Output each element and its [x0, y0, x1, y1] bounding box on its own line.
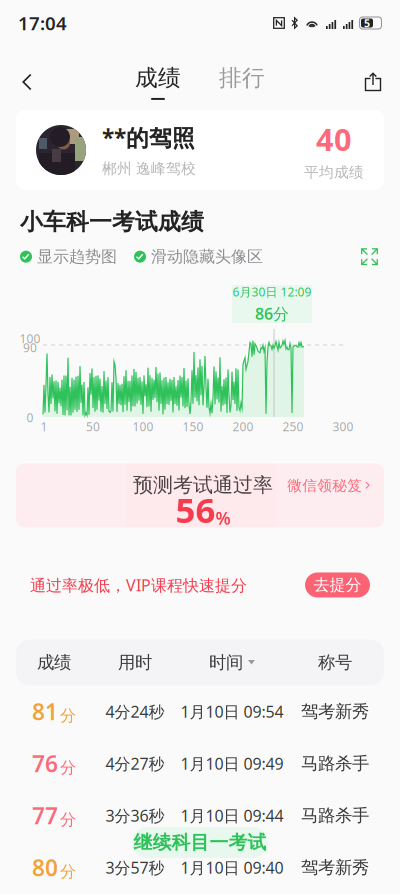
staticText: 77: [32, 800, 58, 830]
button[interactable]: Share: [351, 60, 395, 104]
button[interactable]: 继续科目一考试: [132, 827, 268, 858]
staticText: 马路杀手: [301, 753, 369, 774]
staticText: 250: [282, 418, 303, 434]
button[interactable]: 排行: [200, 60, 284, 104]
staticText: 300: [332, 418, 353, 434]
button[interactable]: 77: [1, 789, 399, 841]
button[interactable]: 微信领秘笈: [278, 477, 370, 493]
staticText: 驾考新秀: [301, 701, 369, 722]
staticText: 小车科一考试成绩: [20, 208, 204, 236]
button[interactable]: 81: [1, 685, 399, 737]
staticText: 成绩: [135, 64, 181, 92]
staticText: 4分27秒: [105, 753, 164, 774]
button[interactable]: 时间: [178, 639, 286, 685]
staticText: 1月10日 09:40: [180, 857, 283, 878]
staticText: 排行: [219, 64, 265, 92]
staticText: 200: [232, 418, 253, 434]
staticText: 3分36秒: [105, 805, 164, 826]
button[interactable]: 成绩: [116, 60, 200, 104]
button[interactable]: Fullscreen: [361, 248, 378, 265]
staticText: 1月10日 09:44: [180, 805, 283, 826]
staticText: 分: [60, 706, 76, 726]
staticText: 3分57秒: [105, 857, 164, 878]
staticText: 驾考新秀: [301, 857, 369, 878]
staticText: 郴州 逸峰驾校: [102, 159, 196, 177]
staticText: 50: [86, 418, 100, 434]
staticText: 微信领秘笈: [287, 476, 362, 494]
staticText: 100: [19, 330, 40, 346]
button[interactable]: 去提分: [305, 572, 370, 597]
staticText: 继续科目一考试: [133, 831, 266, 854]
button[interactable]: 80: [1, 841, 399, 893]
staticText: 5: [364, 16, 370, 30]
staticText: 76: [32, 748, 58, 778]
staticText: 40: [316, 119, 352, 159]
staticText: 分: [60, 758, 76, 778]
staticText: 86分: [255, 303, 289, 324]
button[interactable]: 滑动隐藏头像区: [134, 247, 263, 266]
staticText: 称号: [318, 652, 352, 673]
staticText: 1月10日 09:49: [180, 753, 283, 774]
staticText: 马路杀手: [301, 805, 369, 826]
staticText: 56: [175, 486, 215, 532]
staticText: 用时: [118, 652, 152, 673]
staticText: %: [215, 506, 230, 529]
staticText: 显示趋势图: [37, 247, 117, 266]
staticText: 成绩: [37, 652, 71, 673]
staticText: 分: [60, 862, 76, 882]
staticText: 90: [23, 339, 37, 355]
staticText: 通过率极低，VIP课程快速提分: [30, 574, 247, 596]
staticText: 1月10日 09:54: [180, 701, 283, 722]
staticText: 100: [132, 418, 153, 434]
staticText: 预测考试通过率: [133, 473, 273, 497]
staticText: 1: [40, 418, 47, 434]
staticText: **的驾照: [102, 122, 195, 152]
button[interactable]: 显示趋势图: [20, 247, 117, 266]
staticText: 17:04: [18, 11, 67, 35]
staticText: 时间: [209, 652, 243, 673]
staticText: 80: [32, 852, 58, 882]
staticText: 4分24秒: [105, 701, 164, 722]
button[interactable]: 76: [1, 737, 399, 789]
staticText: 150: [182, 418, 203, 434]
button[interactable]: Back: [5, 60, 49, 104]
staticText: 6月30日 12:09: [232, 284, 311, 300]
staticText: 平均成绩: [304, 163, 364, 181]
staticText: 81: [32, 696, 58, 726]
staticText: 去提分: [313, 575, 361, 595]
staticText: 分: [60, 810, 76, 830]
staticText: 滑动隐藏头像区: [151, 247, 263, 266]
staticText: 0: [26, 409, 33, 425]
